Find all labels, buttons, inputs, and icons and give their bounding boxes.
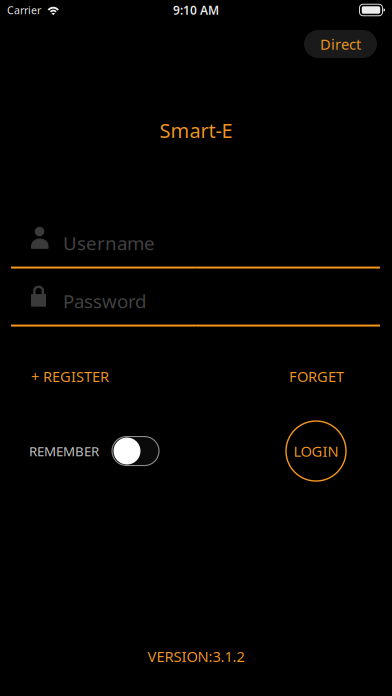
staticText: Direct xyxy=(320,34,361,54)
staticText: VERSION:3.1.2 xyxy=(147,646,244,666)
button[interactable]: LOGIN xyxy=(286,421,346,481)
button[interactable]: REMEMBER xyxy=(29,436,159,465)
staticText: Smart-E xyxy=(159,117,232,144)
button[interactable]: Username xyxy=(11,220,380,269)
staticText: REMEMBER xyxy=(29,442,99,460)
staticText: FORGET xyxy=(289,367,344,386)
staticText: Carrier xyxy=(7,3,41,17)
staticText: 9:10 AM xyxy=(173,2,219,18)
staticText: LOGIN xyxy=(293,441,338,461)
button[interactable]: FORGET xyxy=(289,367,344,386)
staticText: + REGISTER xyxy=(31,367,109,386)
button[interactable]: + REGISTER xyxy=(31,367,109,386)
button[interactable]: Password xyxy=(11,278,380,327)
button[interactable]: Direct xyxy=(304,30,377,58)
staticText: Username xyxy=(63,231,155,255)
staticText: Password xyxy=(63,289,146,313)
